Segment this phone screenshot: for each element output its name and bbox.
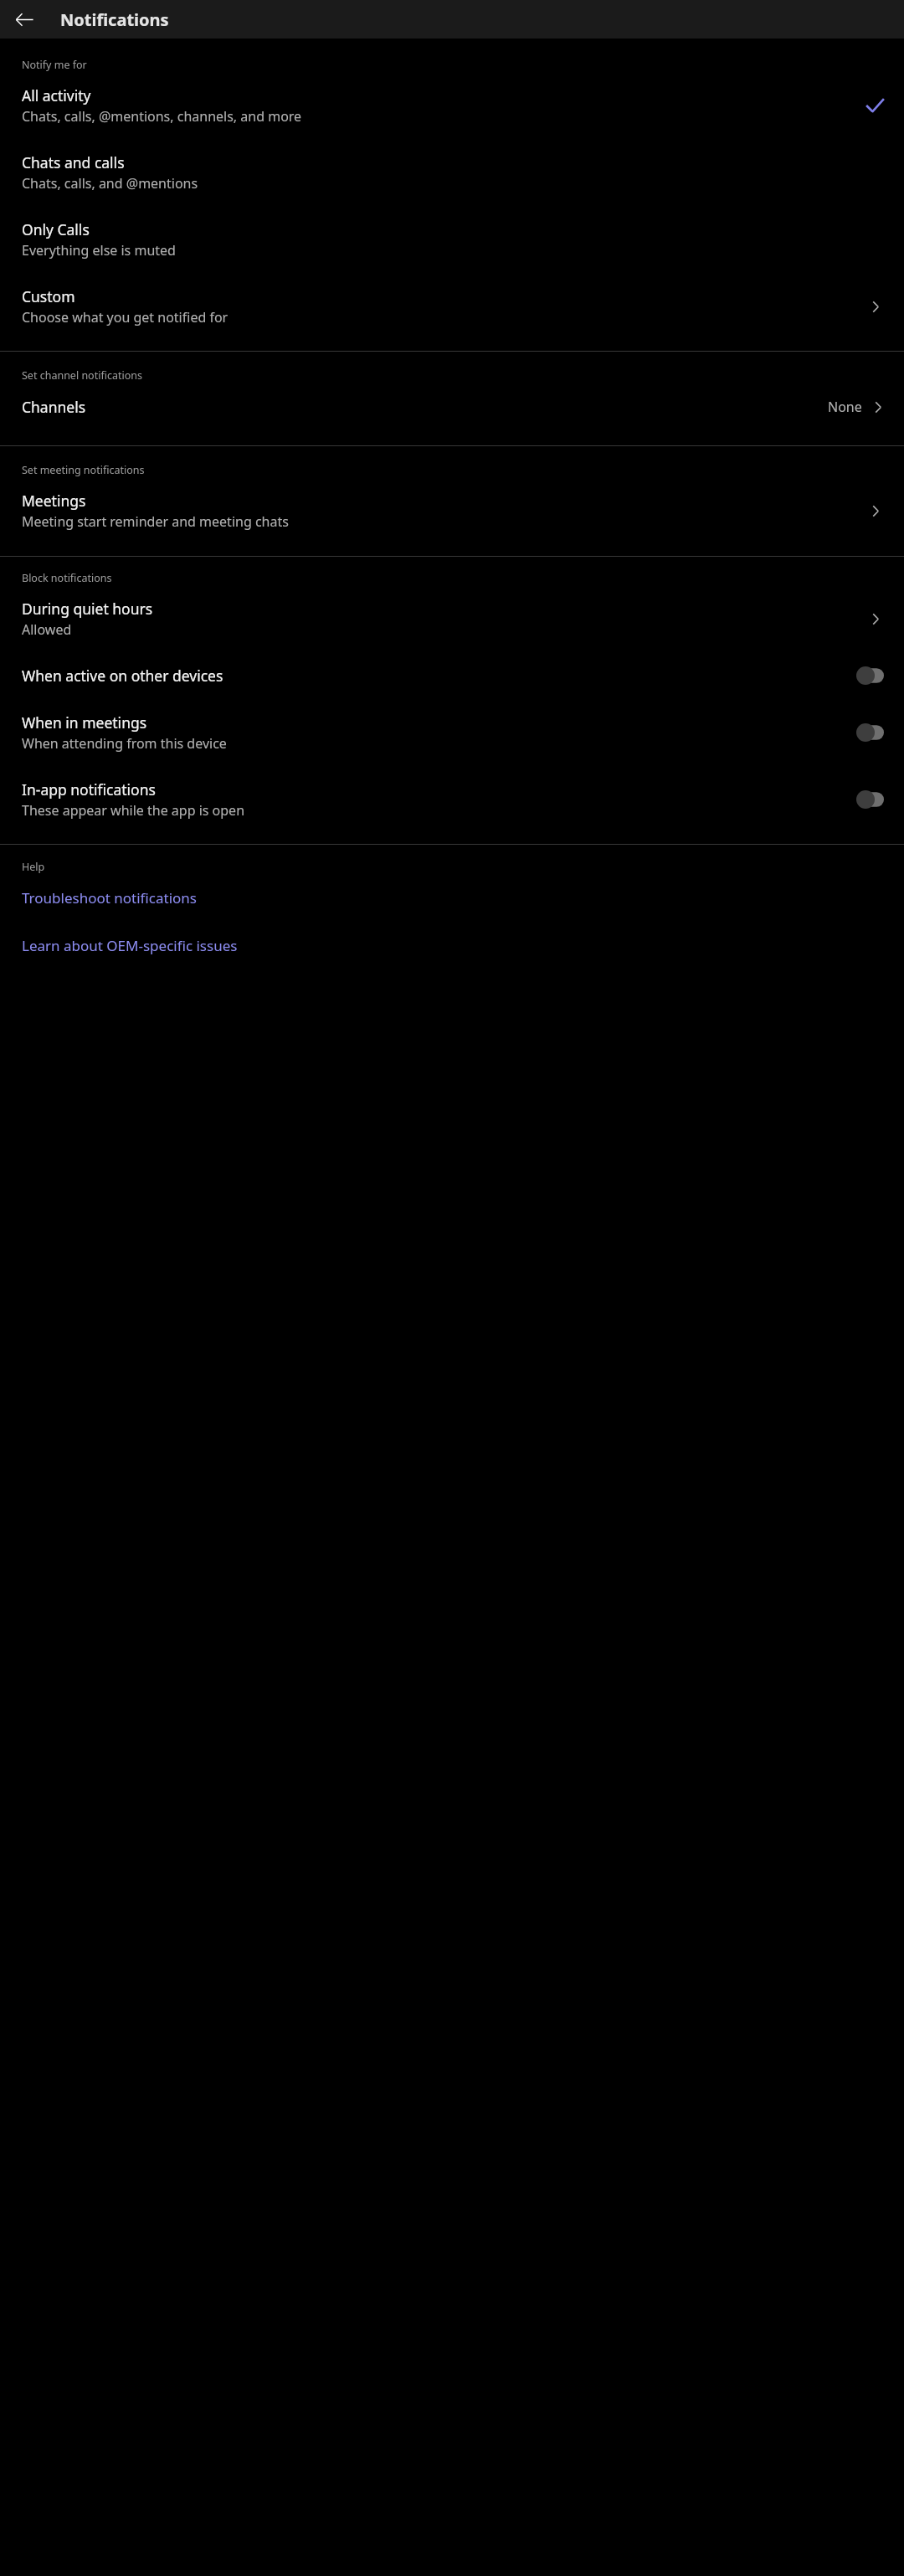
staticText: None xyxy=(828,398,862,416)
staticText: Block notifications xyxy=(22,571,112,585)
button[interactable]: Custom xyxy=(0,273,904,340)
staticText: During quiet hours xyxy=(22,599,153,619)
staticText: Notify me for xyxy=(22,58,87,72)
button[interactable]: Back xyxy=(5,0,44,39)
button[interactable]: Chats and calls xyxy=(0,139,904,206)
staticText: Everything else is muted xyxy=(22,241,176,260)
staticText: In-app notifications xyxy=(22,779,156,800)
staticText: Chats, calls, and @mentions xyxy=(22,174,198,193)
button[interactable]: All activity xyxy=(0,72,904,139)
staticText: Choose what you get notified for xyxy=(22,308,229,326)
staticText: Chats, calls, @mentions, channels, and m… xyxy=(22,107,302,126)
button[interactable]: When active on other devices xyxy=(0,652,904,699)
button[interactable]: Learn about OEM-specific issues xyxy=(0,922,904,969)
button[interactable]: When in meetings xyxy=(0,699,904,766)
button[interactable]: Troubleshoot notifications xyxy=(0,874,904,922)
staticText: Meetings xyxy=(22,491,86,511)
button[interactable]: Toggle xyxy=(856,666,884,685)
staticText: Notifications xyxy=(60,8,169,31)
staticText: Troubleshoot notifications xyxy=(22,888,197,908)
staticText: Custom xyxy=(22,286,75,306)
staticText: Allowed xyxy=(22,620,72,639)
button[interactable]: In-app notifications xyxy=(0,766,904,833)
staticText: These appear while the app is open xyxy=(22,801,245,820)
staticText: Channels xyxy=(22,397,828,417)
button[interactable]: Meetings xyxy=(0,477,904,544)
staticText: When in meetings xyxy=(22,712,147,733)
staticText: Meeting start reminder and meeting chats xyxy=(22,512,289,531)
staticText: Set channel notifications xyxy=(22,368,142,383)
staticText: Help xyxy=(22,860,45,874)
button[interactable]: Channels xyxy=(0,383,904,431)
button[interactable]: During quiet hours xyxy=(0,585,904,652)
staticText: Learn about OEM-specific issues xyxy=(22,936,238,955)
staticText: Set meeting notifications xyxy=(22,463,145,477)
staticText: When attending from this device xyxy=(22,734,227,753)
button[interactable]: Only Calls xyxy=(0,206,904,273)
staticText: When active on other devices xyxy=(22,666,223,686)
staticText: All activity xyxy=(22,85,91,105)
button[interactable]: Toggle xyxy=(856,723,884,742)
button[interactable]: Toggle xyxy=(856,790,884,809)
staticText: Only Calls xyxy=(22,219,90,239)
staticText: Chats and calls xyxy=(22,152,125,172)
